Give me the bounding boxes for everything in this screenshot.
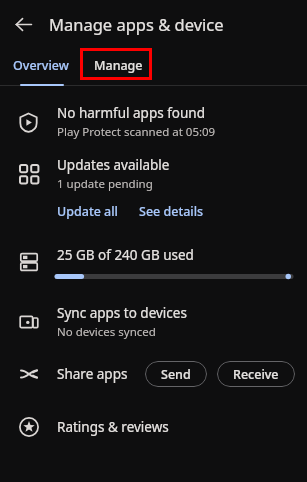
staticText: 1 update pending — [57, 176, 153, 192]
staticText: Manage — [94, 57, 143, 74]
button[interactable]: Back — [6, 7, 40, 41]
staticText: Manage apps & device — [49, 13, 224, 35]
button[interactable]: Update all — [57, 203, 118, 220]
button[interactable]: Updates available — [0, 154, 307, 194]
button[interactable]: See details — [139, 203, 204, 220]
staticText: Update all — [57, 203, 118, 220]
staticText: Receive — [233, 366, 279, 383]
button[interactable]: Receive — [217, 361, 295, 387]
staticText: Play Protect scanned at 05:09 — [57, 124, 216, 140]
staticText: Share apps — [57, 365, 128, 383]
button[interactable]: Overview — [0, 47, 82, 83]
button[interactable]: Sync apps to devices — [0, 302, 307, 342]
button[interactable]: No harmful apps found — [0, 102, 307, 142]
button[interactable]: Ratings & reviews — [0, 411, 307, 443]
staticText: Updates available — [57, 156, 170, 174]
staticText: No harmful apps found — [57, 104, 205, 122]
staticText: Ratings & reviews — [57, 418, 169, 436]
staticText: No devices synced — [57, 324, 156, 340]
staticText: 25 GB of 240 GB used — [57, 246, 194, 264]
button[interactable]: Manage — [82, 47, 154, 83]
staticText: Overview — [13, 57, 69, 74]
staticText: Send — [161, 366, 191, 383]
staticText: Sync apps to devices — [57, 304, 187, 322]
button[interactable]: Send — [145, 361, 207, 387]
button[interactable]: 25 GB of 240 GB used — [0, 240, 307, 284]
staticText: See details — [139, 203, 204, 220]
